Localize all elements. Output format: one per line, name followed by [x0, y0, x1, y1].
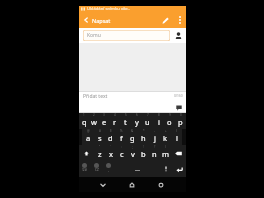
staticText: x [109, 149, 113, 159]
button[interactable]: y [131, 113, 142, 129]
button[interactable]: l [171, 129, 182, 145]
button[interactable]: f [116, 129, 127, 145]
staticText: h [141, 133, 146, 143]
button[interactable]: Komu [83, 30, 170, 41]
staticText: ; [132, 145, 133, 149]
staticText: ! [143, 145, 144, 149]
staticText: 6 [136, 113, 138, 117]
staticText: m [162, 149, 170, 159]
staticText: b [141, 149, 146, 159]
staticText: Napsat [92, 17, 111, 24]
button[interactable]: s [94, 129, 105, 145]
staticText: z [98, 149, 102, 159]
button[interactable]: j [149, 129, 160, 145]
button[interactable]: More options [173, 12, 186, 28]
button[interactable]: CZ [90, 161, 102, 177]
staticText: u [145, 117, 150, 127]
button[interactable]: o [164, 113, 175, 129]
staticText: a [86, 133, 91, 143]
staticText: q [82, 117, 87, 127]
staticText: 5 [125, 113, 127, 117]
staticText: ( [176, 129, 177, 133]
staticText: ' [110, 145, 111, 149]
button[interactable]: x [105, 145, 116, 161]
staticText: p [178, 117, 183, 127]
staticText: d [108, 133, 113, 143]
button[interactable]: Space [114, 161, 160, 177]
button[interactable]: d [105, 129, 116, 145]
button[interactable]: Send message [172, 103, 186, 113]
staticText: - [154, 129, 155, 133]
staticText: $ [110, 129, 112, 133]
staticText: # [99, 129, 101, 133]
staticText: k [163, 133, 168, 143]
staticText: o [167, 117, 172, 127]
button[interactable]: t [120, 113, 131, 129]
staticText: y [135, 117, 139, 127]
staticText: !2# [82, 168, 87, 172]
button[interactable]: a [82, 129, 94, 145]
staticText: c [120, 149, 124, 159]
button[interactable]: !2# [79, 161, 90, 177]
staticText: g [130, 133, 135, 143]
button[interactable]: c [116, 145, 127, 161]
staticText: * [143, 129, 145, 133]
staticText: & [131, 129, 134, 133]
staticText: 0/160 [174, 94, 183, 98]
staticText: % [120, 129, 123, 133]
staticText: j [154, 133, 156, 143]
button[interactable]: k [160, 129, 171, 145]
staticText: 4 [114, 113, 116, 117]
button[interactable]: Home [124, 177, 140, 192]
button[interactable]: Voice input [160, 161, 172, 177]
button[interactable]: u [142, 113, 153, 129]
staticText: n [152, 149, 157, 159]
staticText: Ukládání snímku obr… [87, 6, 131, 12]
button[interactable]: m [160, 145, 171, 161]
staticText: 0 [180, 113, 182, 117]
button[interactable]: g [127, 129, 138, 145]
button[interactable]: w [89, 113, 99, 129]
staticText: 8 [158, 113, 160, 117]
button[interactable]: Recent apps [153, 177, 169, 192]
staticText: CZ [95, 168, 99, 172]
staticText: v [131, 149, 135, 159]
staticText: Přidat text [83, 93, 108, 100]
staticText: + [165, 129, 167, 133]
button[interactable]: n [149, 145, 160, 161]
button[interactable]: , [102, 161, 114, 177]
button[interactable]: h [138, 129, 149, 145]
staticText: 2 [93, 113, 95, 117]
staticText: f [120, 133, 123, 143]
button[interactable]: Edit [157, 12, 173, 28]
button[interactable]: e [99, 113, 109, 129]
staticText: , [108, 168, 109, 172]
staticText: : [121, 145, 122, 149]
button[interactable]: Enter [172, 161, 186, 177]
button[interactable]: b [138, 145, 149, 161]
staticText: w [91, 117, 97, 127]
staticText: l [176, 133, 178, 143]
staticText: 9 [169, 113, 171, 117]
button[interactable]: Back [79, 12, 92, 28]
staticText: i [158, 117, 160, 127]
staticText: s [98, 133, 102, 143]
button[interactable]: Shift [79, 145, 94, 161]
button[interactable]: r [109, 113, 120, 129]
staticText: ? [154, 145, 156, 149]
button[interactable]: v [127, 145, 138, 161]
button[interactable]: Contacts [170, 28, 186, 43]
staticText: ) [165, 145, 166, 149]
button[interactable]: i [153, 113, 164, 129]
button[interactable]: z [94, 145, 105, 161]
button[interactable]: q [79, 113, 89, 129]
staticText: e [102, 117, 107, 127]
staticText: " [99, 145, 101, 149]
button[interactable]: Back [95, 177, 111, 192]
button[interactable]: Backspace [171, 145, 186, 161]
staticText: 1 [83, 113, 85, 117]
staticText: t [124, 117, 127, 127]
staticText: r [113, 117, 117, 127]
button[interactable]: p [175, 113, 186, 129]
staticText: @ [87, 129, 90, 133]
